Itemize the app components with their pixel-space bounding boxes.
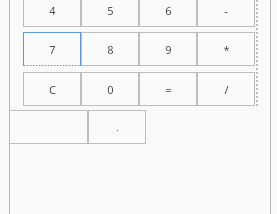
button[interactable]: .	[88, 110, 146, 144]
staticText: .	[116, 121, 119, 133]
button[interactable]: 5	[81, 0, 139, 27]
staticText: *	[223, 42, 230, 57]
button[interactable]: =	[139, 72, 197, 106]
button[interactable]: 0	[81, 72, 139, 106]
staticText: 4	[49, 3, 56, 18]
button[interactable]: 9	[139, 32, 197, 66]
button[interactable]: Empty cell	[9, 110, 88, 144]
staticText: 0	[107, 82, 114, 97]
button[interactable]: 8	[81, 32, 139, 66]
staticText: 9	[165, 42, 172, 57]
staticText: 7	[49, 42, 56, 57]
staticText: /	[224, 82, 229, 97]
button[interactable]: 4	[23, 0, 81, 27]
staticText: 5	[107, 3, 114, 18]
button[interactable]: -	[197, 0, 255, 27]
staticText: C	[49, 82, 56, 97]
button[interactable]: 7	[23, 32, 81, 66]
staticText: 8	[107, 42, 114, 57]
staticText: =	[165, 82, 172, 97]
staticText: 6	[165, 3, 172, 18]
button[interactable]: *	[197, 32, 255, 66]
button[interactable]: 6	[139, 0, 197, 27]
button[interactable]: C	[23, 72, 81, 106]
staticText: -	[224, 3, 228, 18]
button[interactable]: /	[197, 72, 255, 106]
